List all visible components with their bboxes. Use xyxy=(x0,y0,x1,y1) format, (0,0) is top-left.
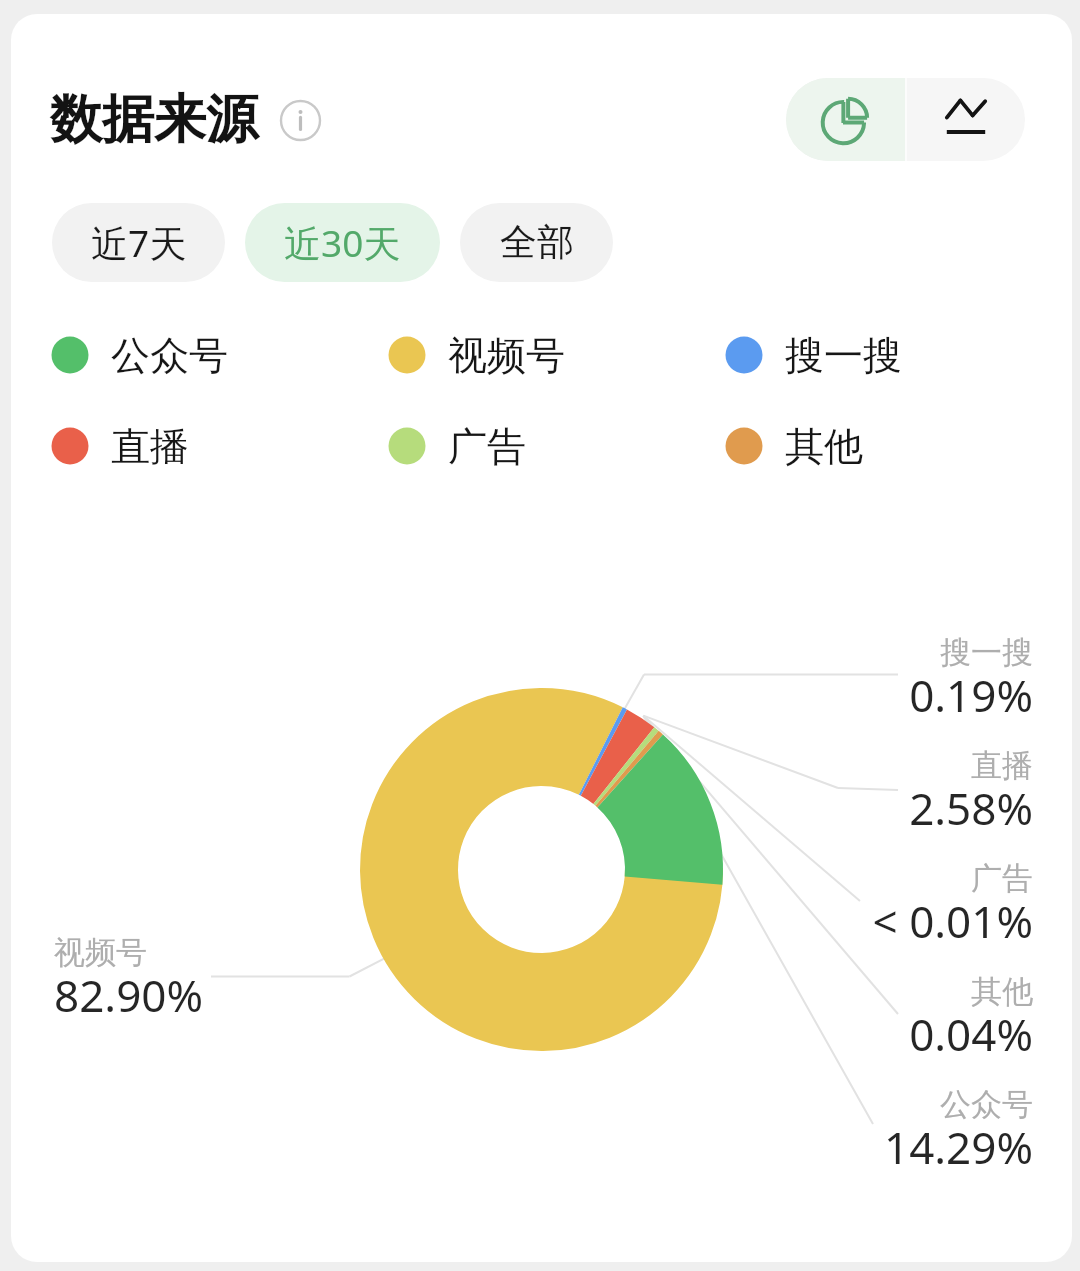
button[interactable]: About data sources xyxy=(279,99,322,142)
button[interactable]: 直播 xyxy=(51,410,189,482)
staticText: 广告 xyxy=(633,859,1033,898)
button[interactable]: 公众号 xyxy=(633,1084,1033,1190)
staticText: 直播 xyxy=(633,746,1033,785)
button[interactable]: 搜一搜 xyxy=(725,319,902,391)
button[interactable]: 数据来源 xyxy=(50,87,258,153)
staticText: 公众号 xyxy=(633,1085,1033,1124)
staticText: 全部 xyxy=(500,219,574,266)
button[interactable]: 公众号 xyxy=(51,319,228,391)
staticText: 其他 xyxy=(785,422,863,471)
button[interactable]: 视频号 xyxy=(388,319,565,391)
staticText: < 0.01% xyxy=(633,891,1033,951)
staticText: 其他 xyxy=(633,972,1033,1011)
staticText: 广告 xyxy=(448,422,526,471)
staticText: 搜一搜 xyxy=(633,633,1033,672)
staticText: 0.19% xyxy=(633,665,1033,725)
button[interactable]: 广告 xyxy=(633,858,1033,964)
staticText: 公众号 xyxy=(111,331,228,380)
button[interactable]: 直播 xyxy=(633,745,1033,851)
button[interactable]: 广告 xyxy=(388,410,526,482)
staticText: 视频号 xyxy=(448,331,565,380)
staticText: 直播 xyxy=(111,422,189,471)
button[interactable]: 其他 xyxy=(633,971,1033,1077)
staticText: 82.90% xyxy=(54,965,414,1025)
staticText: 近30天 xyxy=(284,217,401,268)
staticText: 14.29% xyxy=(633,1117,1033,1177)
button[interactable]: 其他 xyxy=(725,410,863,482)
button[interactable]: 视频号 xyxy=(54,933,414,1039)
staticText: 搜一搜 xyxy=(785,331,902,380)
button[interactable]: 搜一搜 xyxy=(633,632,1033,738)
button[interactable]: 全部 xyxy=(460,203,613,282)
button[interactable]: Line chart view xyxy=(907,78,1025,161)
staticText: 2.58% xyxy=(633,778,1033,838)
staticText: 近7天 xyxy=(91,217,187,268)
button[interactable]: 近7天 xyxy=(52,203,225,282)
staticText: 视频号 xyxy=(54,933,414,972)
button[interactable]: Pie chart view xyxy=(786,78,905,161)
staticText: 0.04% xyxy=(633,1004,1033,1064)
button[interactable]: 近30天 xyxy=(245,203,440,282)
